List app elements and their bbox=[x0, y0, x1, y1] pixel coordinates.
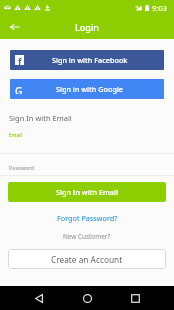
button[interactable]: Forgot Password? bbox=[0, 212, 174, 224]
button[interactable]: Back bbox=[5, 18, 23, 36]
button[interactable]: Sign In with Email bbox=[8, 182, 166, 202]
staticText: Sign In with Email bbox=[9, 113, 72, 123]
button[interactable]: G bbox=[10, 79, 164, 99]
staticText: Email bbox=[9, 132, 22, 139]
staticText: Password bbox=[9, 164, 34, 171]
staticText: Sign In with Email bbox=[56, 187, 118, 197]
staticText: 9:03 bbox=[152, 3, 167, 13]
staticText: G bbox=[15, 84, 23, 94]
button[interactable]: Create an Account bbox=[8, 249, 166, 269]
button[interactable]: f bbox=[10, 50, 164, 70]
staticText: Forgot Password? bbox=[57, 213, 118, 223]
button[interactable]: Recent apps bbox=[125, 288, 145, 308]
button[interactable]: Back bbox=[29, 288, 49, 308]
button[interactable]: Home bbox=[77, 288, 97, 308]
staticText: Login bbox=[75, 21, 99, 33]
staticText: Create an Account bbox=[51, 254, 123, 265]
staticText: Sign in with Facebook bbox=[52, 55, 128, 65]
staticText: Sign in with Google bbox=[56, 84, 124, 94]
staticText: New Customer? bbox=[63, 232, 111, 241]
staticText: f bbox=[18, 55, 22, 65]
